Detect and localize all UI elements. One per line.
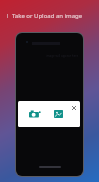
staticText: Take or Upload an image xyxy=(12,12,83,20)
button[interactable]: Take photo xyxy=(27,106,43,122)
button[interactable]: Upload image xyxy=(54,110,63,118)
staticText: image will appear here xyxy=(46,54,79,58)
button[interactable]: Close xyxy=(69,103,78,112)
